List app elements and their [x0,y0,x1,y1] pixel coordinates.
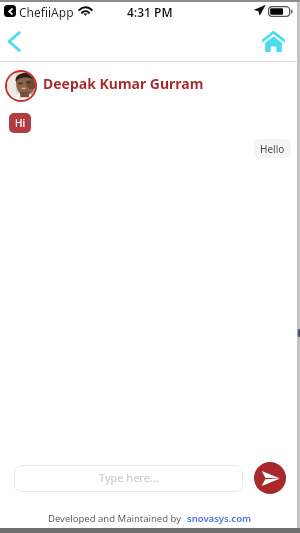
staticText: Type here... [99,470,159,485]
button[interactable]: snovasys.com [187,512,252,525]
staticText: Hi [15,116,25,130]
staticText: Developed and Maintained by [48,512,182,525]
button[interactable]: Type here... [14,465,243,492]
staticText: Hello [260,142,285,156]
staticText: 4:31 PM [127,4,173,20]
button[interactable]: Hi [9,113,31,133]
staticText: ChefiiApp [19,4,74,20]
button[interactable]: Send [254,462,286,494]
button[interactable]: Hello [254,139,291,159]
button[interactable]: Back to ChefiiApp [4,5,16,17]
staticText: Deepak Kumar Gurram [43,74,204,93]
button[interactable]: Home [260,21,300,61]
button[interactable]: Back [0,21,34,61]
